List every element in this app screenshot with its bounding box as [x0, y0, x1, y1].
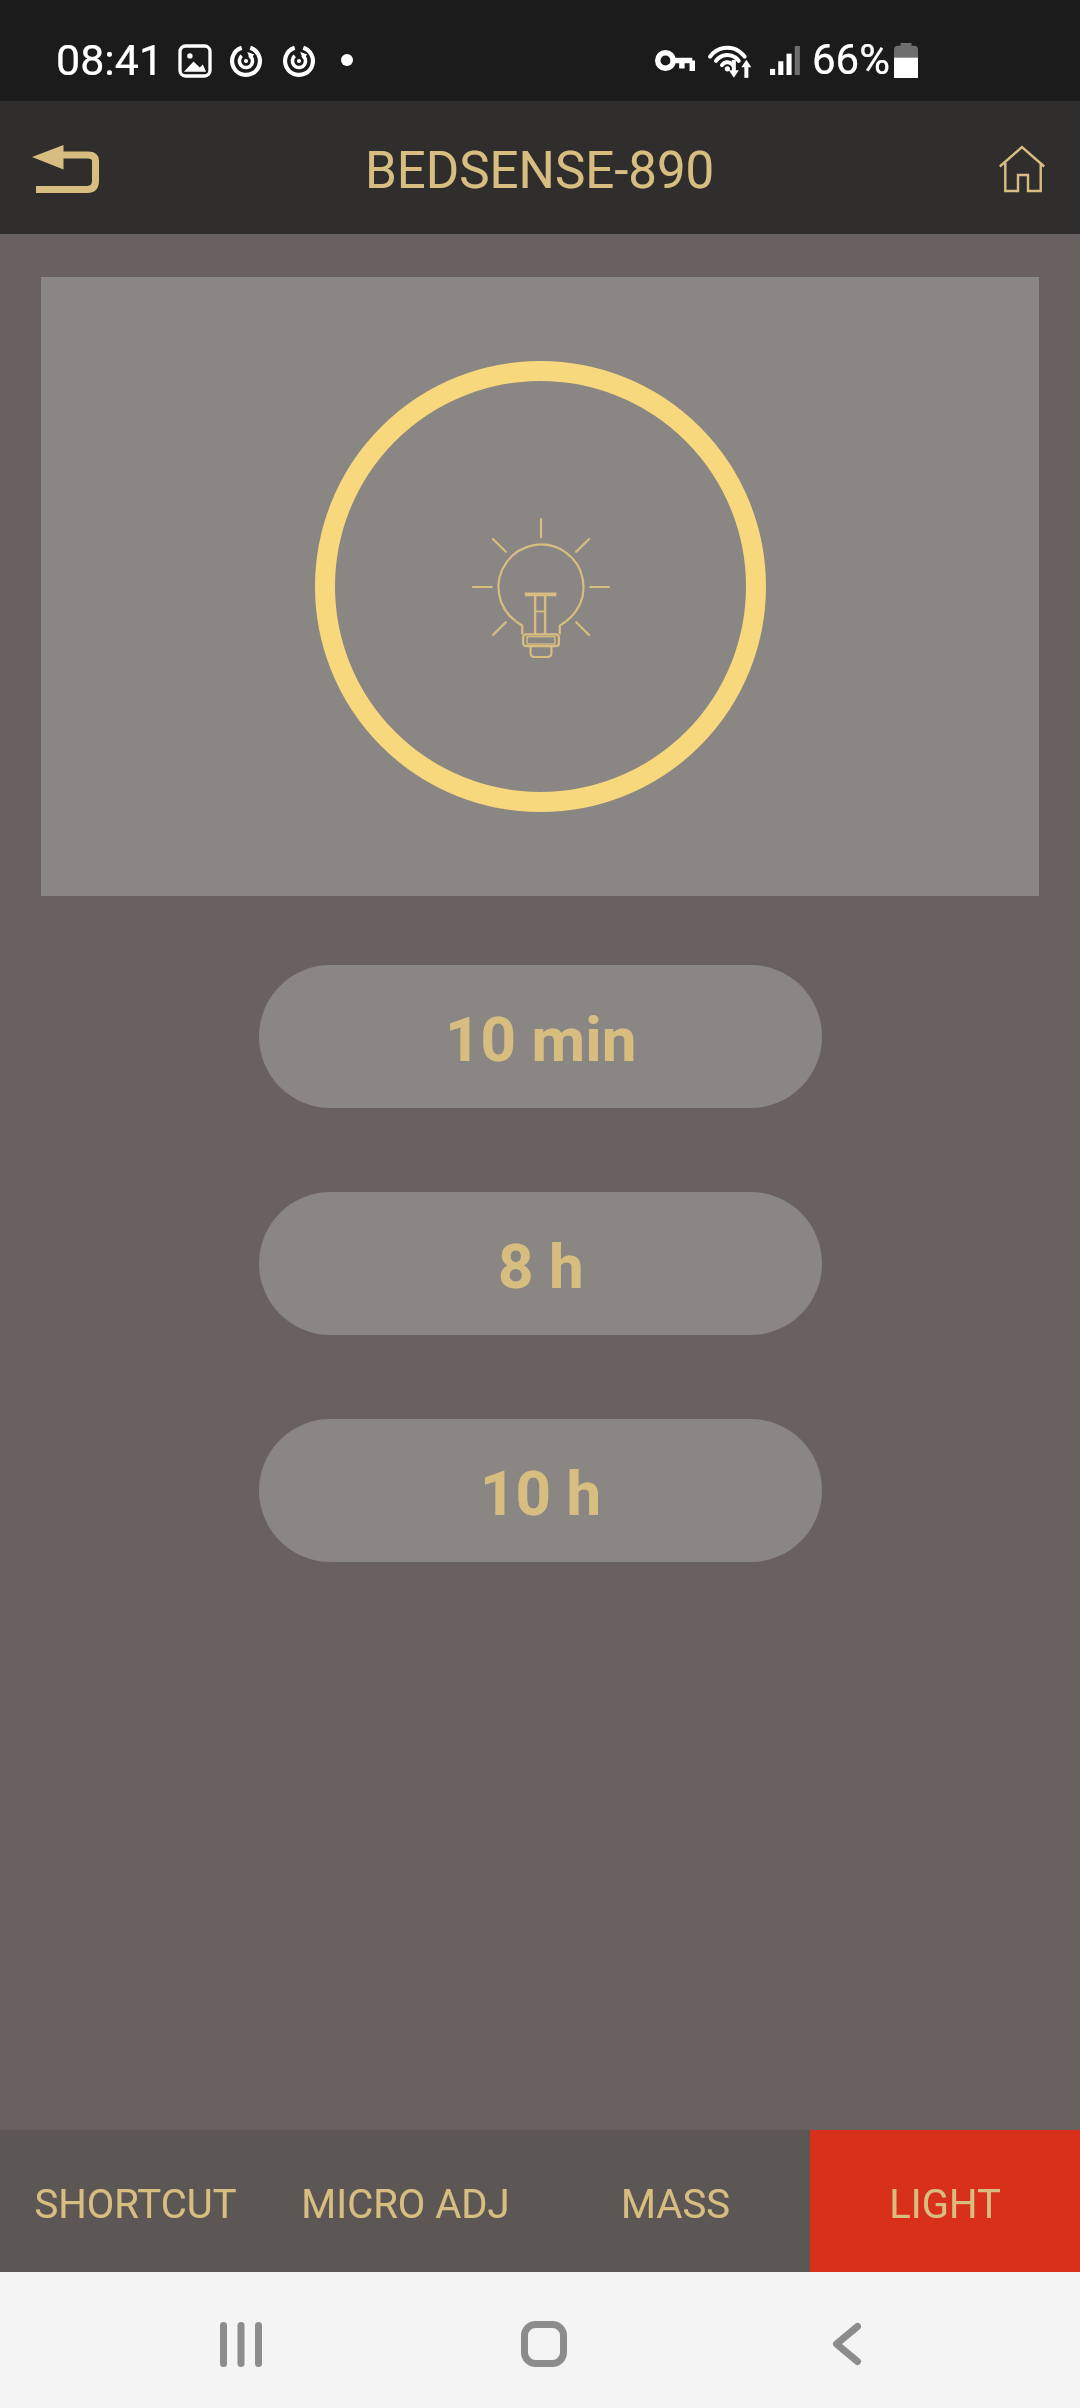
button[interactable]: MASS	[540, 2130, 810, 2272]
staticText: SHORTCUT	[34, 2181, 237, 2228]
button[interactable]: Recent apps	[181, 2286, 301, 2402]
staticText: 10 min	[445, 1003, 637, 1076]
button[interactable]: Home	[963, 101, 1080, 234]
staticText: LIGHT	[889, 2181, 1001, 2228]
staticText: MICRO ADJ	[301, 2181, 510, 2228]
staticText: 66%	[812, 35, 890, 84]
button[interactable]: 10 min	[259, 965, 822, 1108]
staticText: BEDSENSE-890	[365, 141, 715, 201]
button[interactable]: MICRO ADJ	[270, 2130, 540, 2272]
button[interactable]: LIGHT	[810, 2130, 1080, 2272]
staticText: MASS	[621, 2181, 730, 2228]
button[interactable]: Back	[787, 2286, 907, 2402]
button[interactable]: Home	[484, 2286, 604, 2402]
button[interactable]: 8 h	[259, 1192, 822, 1335]
button[interactable]	[41, 277, 1039, 896]
button[interactable]: Back	[6, 101, 126, 234]
staticText: 10 h	[480, 1457, 602, 1530]
button[interactable]: SHORTCUT	[0, 2130, 270, 2272]
staticText: 08:41	[56, 35, 164, 85]
button[interactable]: 10 h	[259, 1419, 822, 1562]
staticText: 8 h	[498, 1230, 584, 1303]
